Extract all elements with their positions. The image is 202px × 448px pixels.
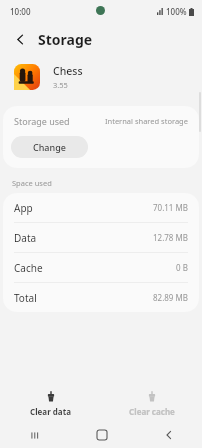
button[interactable]: Clear data [0,384,101,422]
staticText: 70.11 MB [153,202,188,213]
staticText: Total [14,291,37,305]
staticText: Clear data [30,406,71,417]
staticText: App [14,201,33,215]
staticText: 0 B [176,262,188,273]
button[interactable]: Change [11,136,88,158]
button[interactable]: App [3,193,199,222]
staticText: Chess [53,64,83,78]
button[interactable]: Home [68,422,135,448]
staticText: Space used [12,178,52,188]
staticText: Storage [38,30,93,49]
staticText: Storage used [14,115,70,127]
staticText: Internal shared storage [105,116,188,126]
button[interactable]: Back [10,29,30,49]
button[interactable]: Clear cache [101,384,202,422]
staticText: Change [33,141,66,153]
staticText: 3.55 [53,80,68,90]
button[interactable]: Chess [0,56,202,98]
staticText: Data [14,231,37,245]
staticText: 82.89 MB [153,292,188,303]
staticText: 12.78 MB [153,232,188,243]
staticText: Cache [14,261,43,275]
button[interactable]: Back [135,422,202,448]
button[interactable]: Cache [3,253,199,282]
staticText: 100% [166,6,187,17]
staticText: 10:00 [10,6,31,17]
staticText: Clear cache [129,406,175,417]
button[interactable]: Data [3,223,199,252]
button[interactable]: Recents [0,422,68,448]
button[interactable]: Storage used [3,106,199,136]
